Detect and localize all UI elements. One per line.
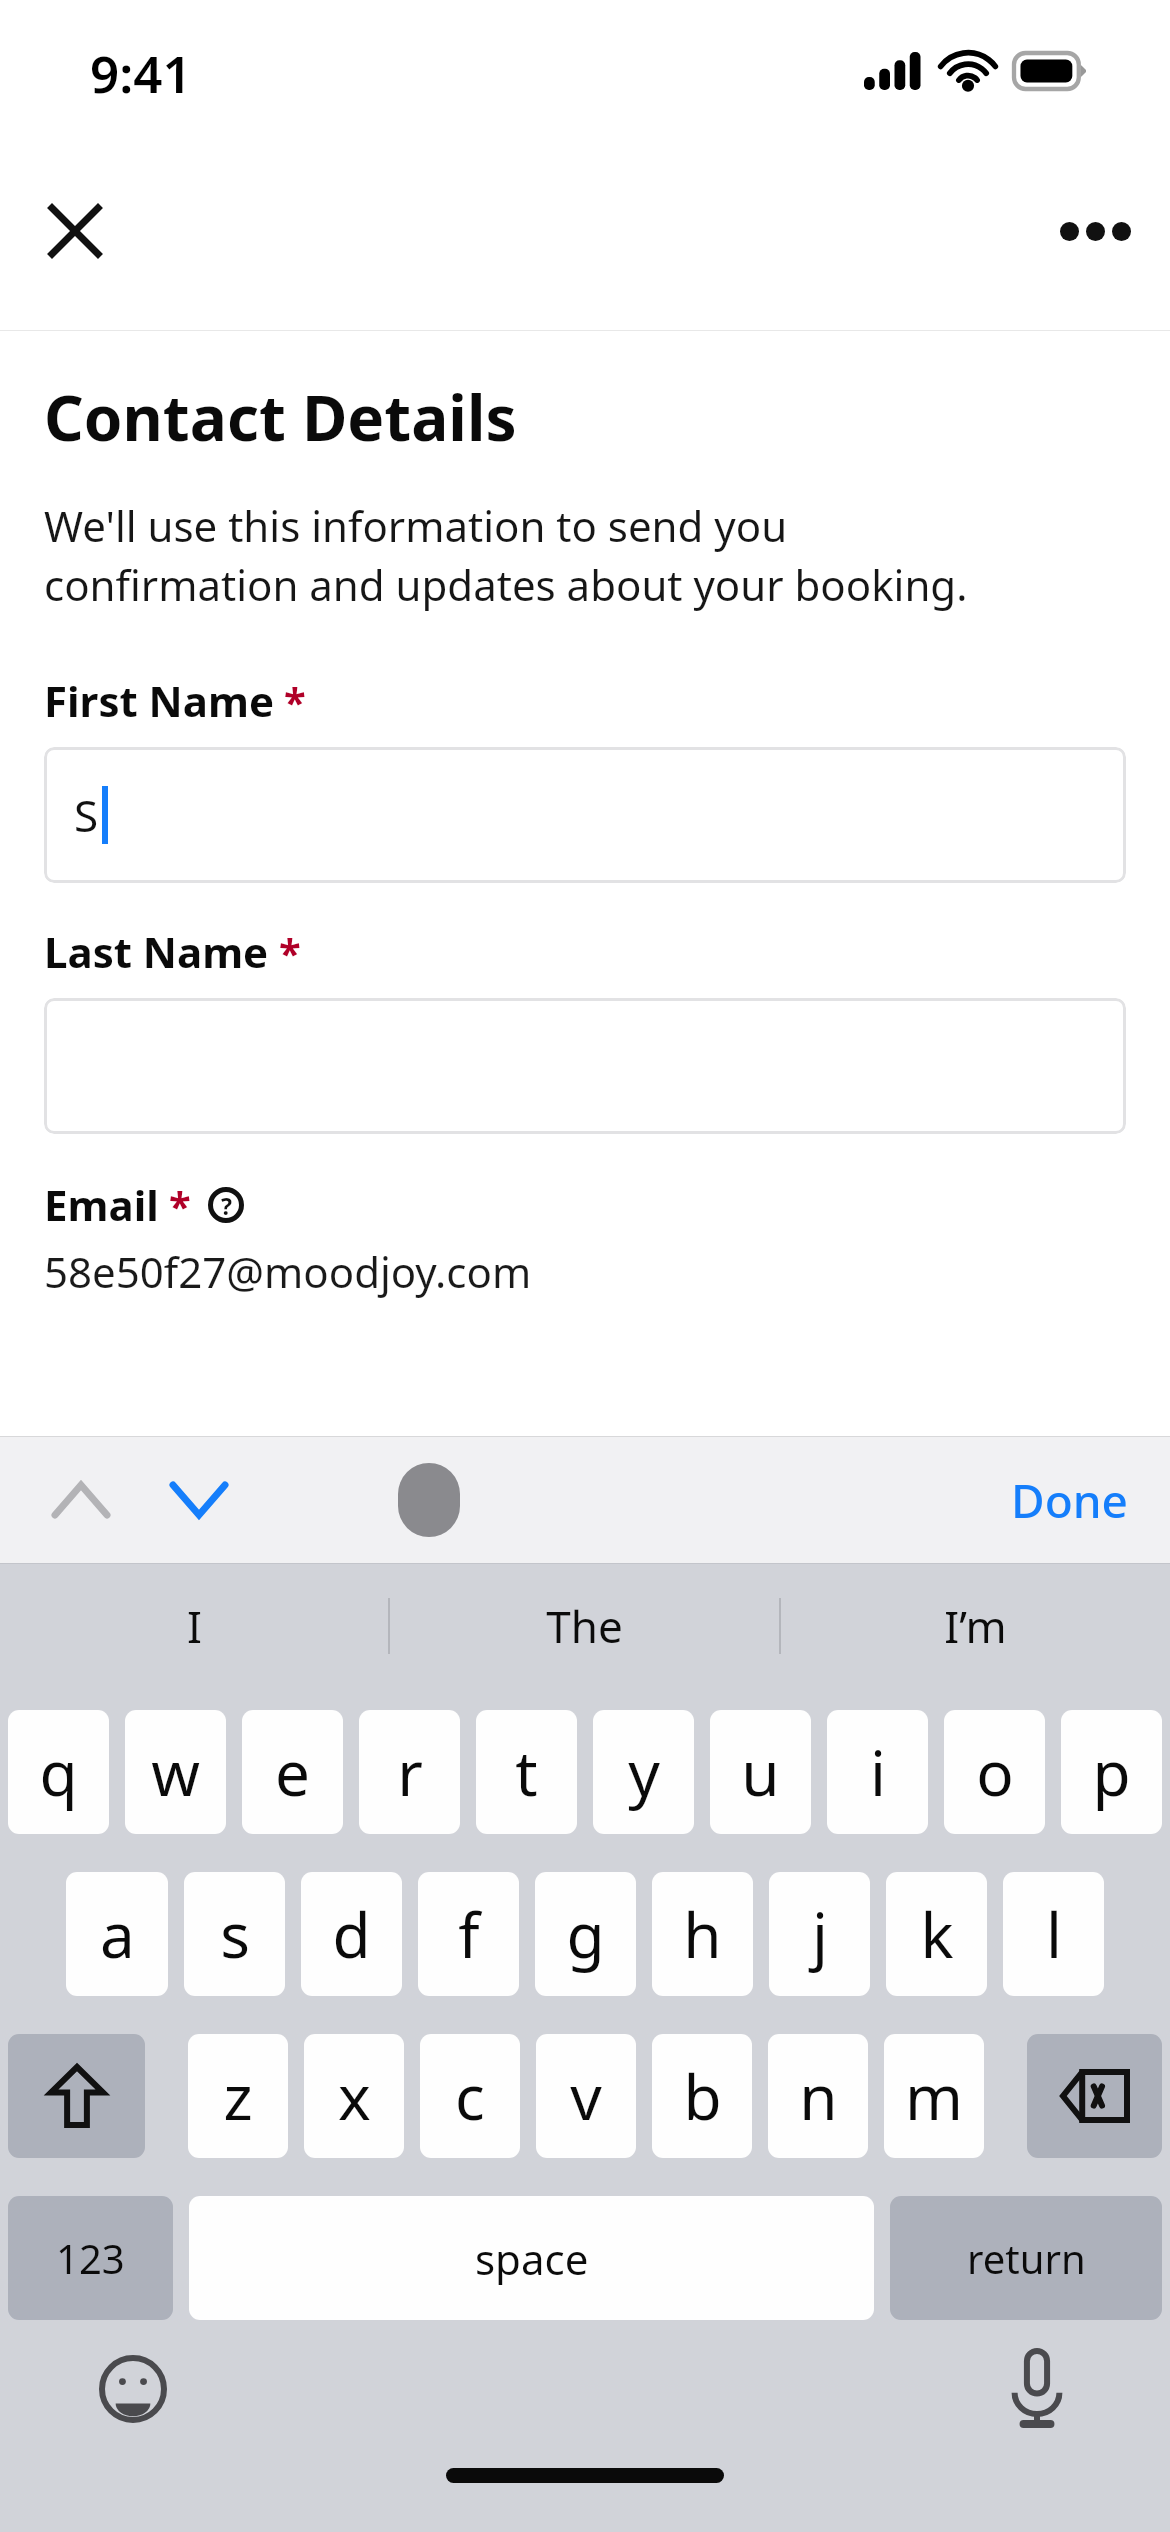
button[interactable]: t: [476, 1710, 577, 1834]
button[interactable]: o: [944, 1710, 1045, 1834]
button[interactable]: s: [184, 1872, 285, 1996]
button[interactable]: Previous field: [38, 1457, 124, 1543]
button[interactable]: f: [418, 1872, 519, 1996]
staticText: w: [151, 1730, 200, 1814]
staticText: I’m: [944, 1596, 1007, 1656]
button[interactable]: n: [768, 2034, 868, 2158]
staticText: i: [870, 1730, 886, 1814]
staticText: *: [284, 674, 306, 728]
button[interactable]: 123: [8, 2196, 173, 2320]
staticText: Last Name: [44, 923, 269, 980]
button[interactable]: I: [0, 1564, 388, 1688]
button[interactable]: x: [304, 2034, 404, 2158]
button[interactable]: I’m: [781, 1564, 1170, 1688]
staticText: S: [74, 785, 99, 845]
staticText: b: [683, 2054, 722, 2138]
staticText: f: [458, 1892, 480, 1976]
button[interactable]: v: [536, 2034, 636, 2158]
staticText: r: [397, 1730, 423, 1814]
staticText: Email: [44, 1176, 159, 1233]
staticText: y: [628, 1730, 660, 1814]
button[interactable]: i: [827, 1710, 928, 1834]
staticText: j: [812, 1892, 828, 1976]
button[interactable]: e: [242, 1710, 343, 1834]
button[interactable]: y: [593, 1710, 694, 1834]
button[interactable]: l: [1003, 1872, 1104, 1996]
button[interactable]: d: [301, 1872, 402, 1996]
button[interactable]: a: [66, 1872, 168, 1996]
button[interactable]: Shift: [8, 2034, 145, 2158]
staticText: 9:41: [90, 38, 192, 107]
staticText: e: [275, 1730, 310, 1814]
button[interactable]: Done: [1011, 1469, 1128, 1532]
staticText: s: [220, 1892, 250, 1976]
staticText: m: [905, 2054, 963, 2138]
button[interactable]: p: [1061, 1710, 1162, 1834]
button[interactable]: b: [652, 2034, 752, 2158]
staticText: o: [976, 1730, 1014, 1814]
staticText: Contact Details: [44, 375, 517, 459]
staticText: return: [967, 2231, 1086, 2285]
button[interactable]: AutoFill: [398, 1463, 460, 1537]
staticText: n: [799, 2054, 838, 2138]
button[interactable]: More options: [1050, 186, 1140, 276]
button[interactable]: Next field: [156, 1457, 242, 1543]
button[interactable]: [44, 998, 1126, 1134]
staticText: g: [566, 1892, 605, 1976]
staticText: *: [279, 925, 301, 979]
button[interactable]: c: [420, 2034, 520, 2158]
staticText: d: [332, 1892, 371, 1976]
button[interactable]: j: [769, 1872, 870, 1996]
staticText: Done: [1011, 1469, 1128, 1532]
button[interactable]: r: [359, 1710, 460, 1834]
staticText: space: [475, 2230, 589, 2287]
button[interactable]: m: [884, 2034, 984, 2158]
staticText: The: [546, 1596, 623, 1656]
staticText: v: [570, 2054, 602, 2138]
staticText: ?: [221, 1190, 232, 1221]
staticText: h: [683, 1892, 722, 1976]
button[interactable]: return: [890, 2196, 1162, 2320]
button[interactable]: q: [8, 1710, 109, 1834]
button[interactable]: g: [535, 1872, 636, 1996]
button[interactable]: k: [886, 1872, 987, 1996]
staticText: c: [455, 2054, 485, 2138]
staticText: u: [741, 1730, 780, 1814]
staticText: a: [100, 1892, 135, 1976]
button[interactable]: Help about email: [205, 1184, 247, 1226]
button[interactable]: w: [125, 1710, 226, 1834]
staticText: k: [920, 1892, 954, 1976]
staticText: q: [39, 1730, 78, 1814]
button[interactable]: Dictation: [994, 2346, 1080, 2432]
staticText: I: [187, 1596, 202, 1656]
button[interactable]: Emoji: [90, 2346, 176, 2432]
button[interactable]: h: [652, 1872, 753, 1996]
staticText: First Name: [44, 672, 274, 729]
staticText: We'll use this information to send you c…: [44, 497, 968, 614]
button[interactable]: S: [44, 747, 1126, 883]
button[interactable]: Backspace: [1027, 2034, 1162, 2158]
staticText: p: [1092, 1730, 1131, 1814]
staticText: l: [1046, 1892, 1062, 1976]
staticText: t: [515, 1730, 538, 1814]
staticText: 58e50f27@moodjoy.com: [44, 1243, 532, 1300]
button[interactable]: Close: [30, 186, 120, 276]
button[interactable]: z: [188, 2034, 288, 2158]
staticText: x: [338, 2054, 371, 2138]
button[interactable]: space: [189, 2196, 874, 2320]
button[interactable]: The: [390, 1564, 779, 1688]
staticText: 123: [56, 2231, 125, 2285]
staticText: *: [169, 1178, 191, 1232]
button[interactable]: u: [710, 1710, 811, 1834]
staticText: z: [223, 2054, 253, 2138]
